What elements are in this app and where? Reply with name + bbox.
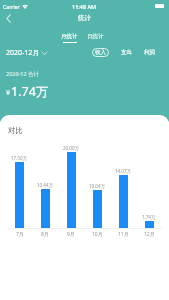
staticText: 7月	[16, 231, 24, 238]
staticText: 1.74万	[11, 83, 49, 100]
staticText: 2020-12月	[6, 48, 40, 58]
staticText: 日统计	[87, 33, 104, 40]
staticText: 20.00万	[63, 145, 80, 151]
staticText: 9月	[67, 231, 75, 238]
staticText: Carrier	[3, 3, 20, 10]
staticText: 10.04万	[89, 183, 106, 189]
button[interactable]: 支出	[121, 49, 132, 56]
staticText: 11月	[118, 231, 129, 238]
staticText: 11:48 AM	[72, 3, 97, 10]
button[interactable]: 收入	[92, 48, 109, 57]
staticText: 17.50万	[11, 155, 28, 161]
staticText: 支出	[121, 49, 132, 56]
button[interactable]: 2020-12月	[6, 48, 47, 58]
staticText: 月统计	[61, 33, 78, 40]
staticText: 收入	[95, 49, 106, 56]
staticText: 1.74万	[142, 214, 156, 220]
button[interactable]: 月统计	[60, 33, 79, 43]
staticText: 对比	[8, 126, 23, 135]
staticText: 12月	[144, 231, 155, 238]
staticText: 统计	[78, 14, 91, 22]
staticText: 利润	[144, 49, 155, 56]
staticText: 10月	[92, 231, 103, 238]
button[interactable]: Back	[0, 10, 16, 26]
staticText: 14.07万	[115, 168, 132, 174]
staticText: 2020-12 合计	[6, 70, 40, 78]
staticText: 10.44万	[37, 182, 54, 188]
button[interactable]: 日统计	[86, 33, 105, 40]
button[interactable]: 利润	[144, 49, 155, 56]
staticText: ¥	[6, 88, 11, 98]
staticText: 8月	[41, 231, 49, 238]
